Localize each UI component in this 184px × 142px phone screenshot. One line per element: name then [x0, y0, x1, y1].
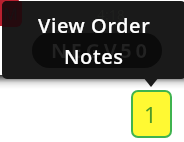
staticText: 4:18 [97, 5, 125, 24]
staticText: 1 [144, 99, 157, 129]
button[interactable]: M [2, 1, 184, 79]
button[interactable]: Order count 1 [133, 92, 170, 136]
staticText: M [3, 3, 19, 25]
staticText: Notes [64, 43, 124, 70]
staticText: View Order [38, 12, 151, 39]
staticText: NEGV50 [51, 37, 151, 64]
